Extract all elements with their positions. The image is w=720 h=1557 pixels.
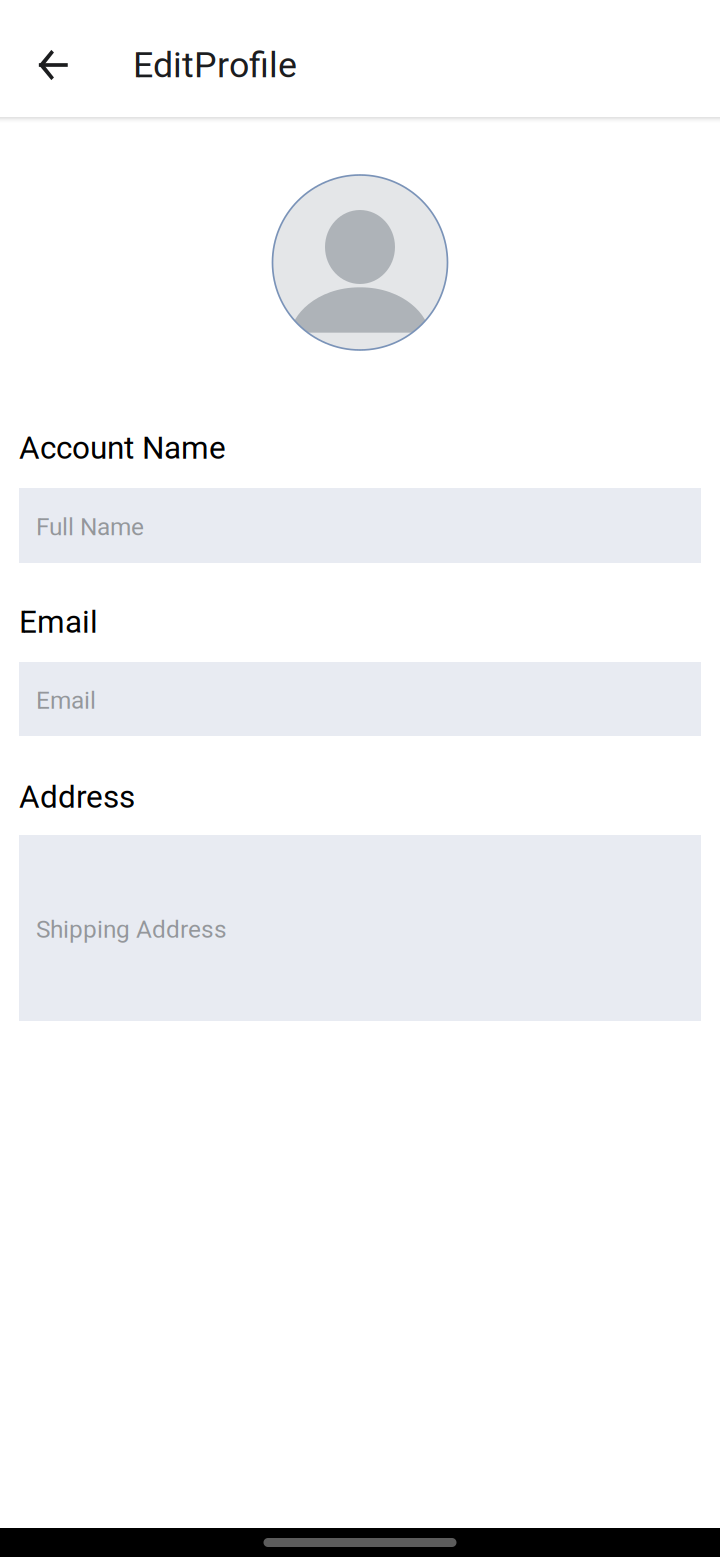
staticText: Address [19,779,135,815]
staticText: Full Name [36,513,144,541]
staticText: Email [19,604,98,640]
button[interactable]: Change profile photo [272,175,447,350]
staticText: Account Name [19,430,226,466]
button[interactable]: Shipping Address [19,835,701,1021]
staticText: Email [36,686,96,715]
button[interactable]: Back [24,36,82,94]
staticText: EditProfile [133,44,297,86]
button[interactable]: Email [19,662,701,736]
button[interactable]: Full Name [19,488,701,563]
staticText: Shipping Address [36,915,227,944]
